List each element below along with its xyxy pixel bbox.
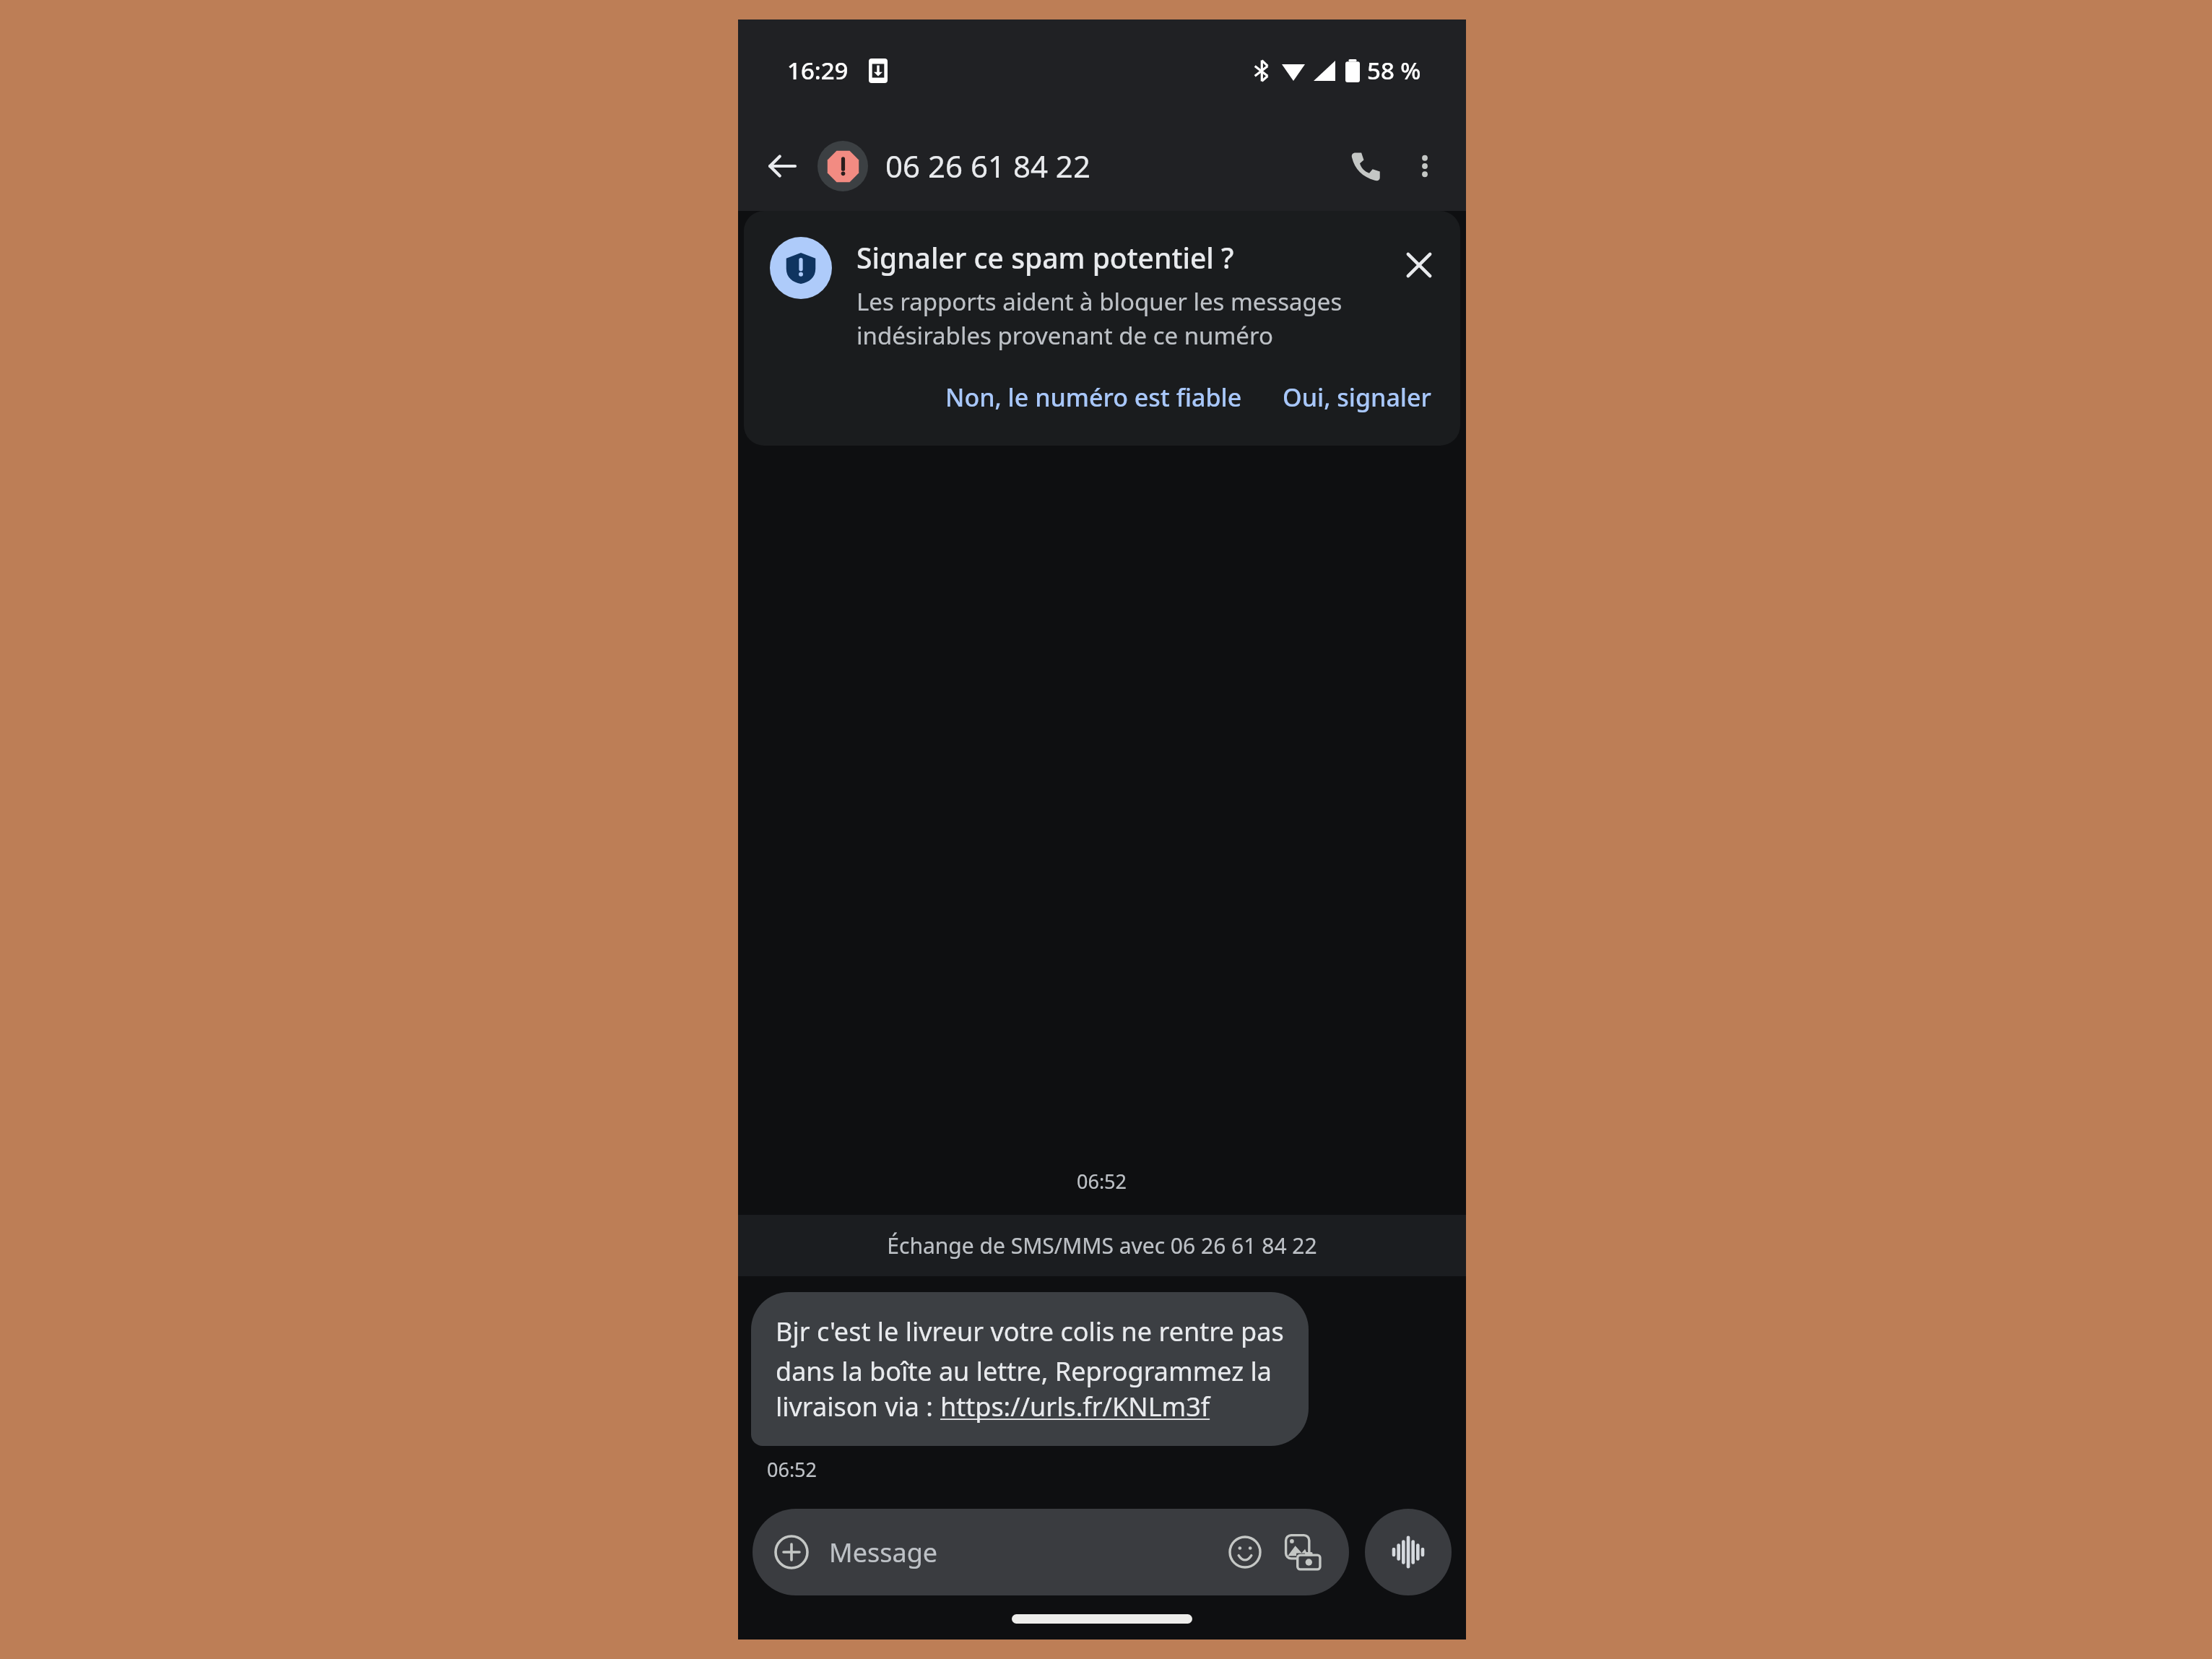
button[interactable]: Oui, signaler (1272, 371, 1441, 424)
staticText: livraison via : (776, 1389, 940, 1424)
button[interactable]: https://urls.fr/KNLm3f (940, 1389, 1210, 1424)
button[interactable]: More options (1397, 138, 1453, 194)
staticText: Les rapports aident à bloquer les messag… (856, 285, 1343, 352)
button[interactable] (817, 141, 868, 191)
button[interactable]: Attach photo (1275, 1525, 1330, 1580)
staticText: Message (829, 1535, 1219, 1570)
staticText: Oui, signaler (1283, 381, 1431, 414)
button[interactable]: Dismiss (1392, 238, 1446, 292)
button[interactable]: Emoji (1219, 1526, 1271, 1578)
staticText: 06:52 (767, 1456, 817, 1483)
staticText: 06:52 (1077, 1168, 1127, 1195)
staticText: Bjr c'est le livreur votre colis ne rent… (776, 1314, 1284, 1389)
staticText: 06 26 61 84 22 (885, 145, 1335, 186)
button[interactable]: Add attachment (768, 1529, 815, 1575)
staticText: Échange de SMS/MMS avec 06 26 61 84 22 (887, 1231, 1317, 1260)
staticText: Non, le numéro est fiable (945, 381, 1242, 414)
button[interactable]: Record audio message (1365, 1509, 1452, 1595)
button[interactable]: Back (754, 138, 810, 194)
button[interactable]: Non, le numéro est fiable (931, 371, 1257, 424)
staticText: Signaler ce spam potentiel ? (856, 238, 1234, 277)
button[interactable]: Call (1335, 135, 1397, 197)
button[interactable]: Bjr c'est le livreur votre colis ne rent… (751, 1292, 1309, 1446)
staticText: 58 % (1367, 54, 1421, 87)
button[interactable]: Add attachment (752, 1509, 1349, 1595)
staticText: 16:29 (787, 54, 849, 87)
